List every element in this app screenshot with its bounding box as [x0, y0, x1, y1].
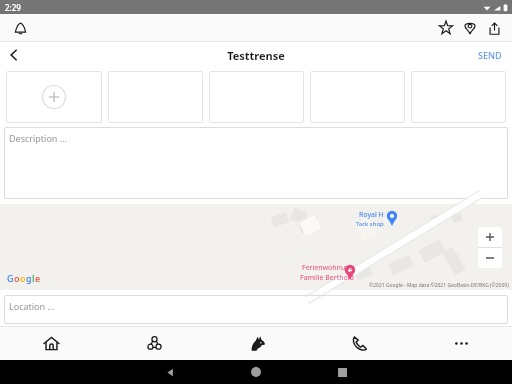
staticText: Testtrense — [227, 48, 285, 63]
staticText: SEND — [478, 49, 502, 61]
button[interactable]: Description ... — [4, 127, 508, 199]
button[interactable]: Horse — [206, 327, 308, 360]
button[interactable]: Photo slot — [209, 71, 304, 123]
staticText: Familie Berthold — [300, 273, 354, 283]
button[interactable]: Zoom in — [478, 227, 502, 247]
button[interactable]: Zoom out — [478, 248, 502, 268]
staticText: Royal H — [359, 210, 384, 220]
button[interactable]: Map — [0, 204, 512, 290]
button[interactable]: Location — [458, 16, 482, 40]
button[interactable]: Favorite — [434, 16, 458, 40]
button[interactable]: Location ... — [4, 295, 508, 324]
button[interactable]: Share — [482, 16, 506, 40]
staticText: Tack shop — [356, 220, 384, 228]
button[interactable]: Photo slot — [310, 71, 405, 123]
button[interactable]: Photo slot — [108, 71, 203, 123]
staticText: o — [14, 272, 20, 284]
staticText: G — [7, 272, 14, 284]
staticText: Description ... — [9, 132, 68, 144]
button[interactable]: Back — [2, 43, 26, 67]
staticText: e — [35, 272, 41, 284]
button[interactable]: More — [410, 327, 512, 360]
staticText: g — [26, 272, 32, 284]
staticText: ©2021 Google - Map data ©2021 GeoBasis-D… — [369, 282, 509, 289]
staticText: l — [32, 272, 35, 284]
staticText: Ferienwohnung — [302, 263, 354, 273]
button[interactable]: Add photo — [6, 71, 102, 123]
staticText: 2:29 — [5, 2, 21, 13]
button[interactable]: Photo slot — [411, 71, 506, 123]
button[interactable]: Horseshoe — [103, 327, 206, 360]
staticText: o — [20, 272, 26, 284]
button[interactable]: Call — [308, 327, 410, 360]
button[interactable]: SEND — [474, 45, 506, 65]
button[interactable]: Notifications — [8, 16, 32, 40]
staticText: Location ... — [9, 300, 55, 312]
button[interactable]: Home — [0, 327, 103, 360]
